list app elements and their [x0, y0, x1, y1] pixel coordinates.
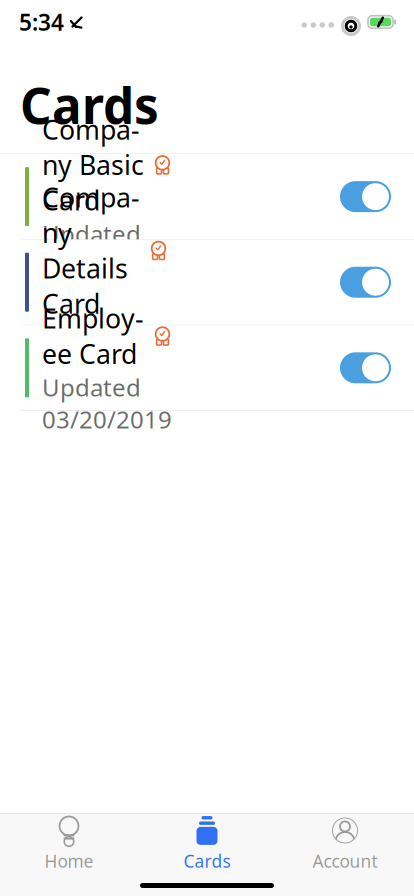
staticText: Company Basic Card: [42, 112, 144, 218]
staticText: Updated 03/18/2019: [42, 321, 172, 385]
staticText: Updated 03/18/2019: [42, 218, 172, 282]
staticText: Employee Card: [42, 300, 144, 371]
staticText: Company Details Card: [42, 179, 140, 321]
button[interactable]: Account: [276, 820, 414, 869]
button[interactable]: Company Basic Card: [0, 154, 414, 239]
staticText: Cards: [20, 72, 159, 137]
button[interactable]: Cards: [138, 820, 276, 869]
staticText: Home: [44, 849, 93, 872]
button[interactable]: Employee Card: [0, 325, 414, 410]
staticText: 5:34: [19, 7, 64, 37]
button[interactable]: Home: [0, 820, 138, 869]
staticText: Updated 03/20/2019: [42, 371, 172, 435]
staticText: Cards: [183, 849, 230, 872]
button[interactable]: Company Details Card: [0, 240, 414, 325]
staticText: Account: [312, 849, 377, 872]
